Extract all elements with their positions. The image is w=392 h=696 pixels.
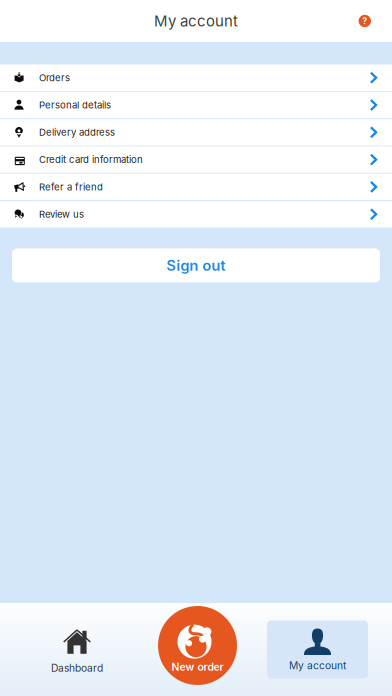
staticText: My account — [289, 659, 346, 672]
staticText: New order — [171, 661, 223, 673]
staticText: ? — [362, 16, 367, 26]
button[interactable]: Dashboard — [12, 601, 142, 696]
button[interactable]: Sign out — [12, 248, 380, 282]
button[interactable]: Personal details — [0, 92, 392, 118]
button[interactable]: Credit card information — [0, 146, 392, 173]
button[interactable]: My account — [267, 620, 368, 678]
staticText: Sign out — [166, 256, 225, 274]
staticText: Credit card information — [39, 154, 143, 165]
staticText: Dashboard — [51, 662, 103, 674]
staticText: Refer a friend — [39, 181, 103, 193]
button[interactable]: Refer a friend — [0, 174, 392, 200]
button[interactable]: Review us — [0, 201, 392, 227]
button[interactable]: Help — [359, 15, 371, 27]
staticText: Personal details — [39, 99, 111, 111]
button[interactable]: Orders — [0, 64, 392, 91]
staticText: Delivery address — [39, 126, 115, 138]
staticText: Review us — [39, 208, 84, 220]
button[interactable]: Delivery address — [0, 119, 392, 145]
button[interactable]: New order — [158, 606, 237, 685]
staticText: My account — [154, 12, 238, 30]
staticText: Orders — [39, 72, 70, 83]
